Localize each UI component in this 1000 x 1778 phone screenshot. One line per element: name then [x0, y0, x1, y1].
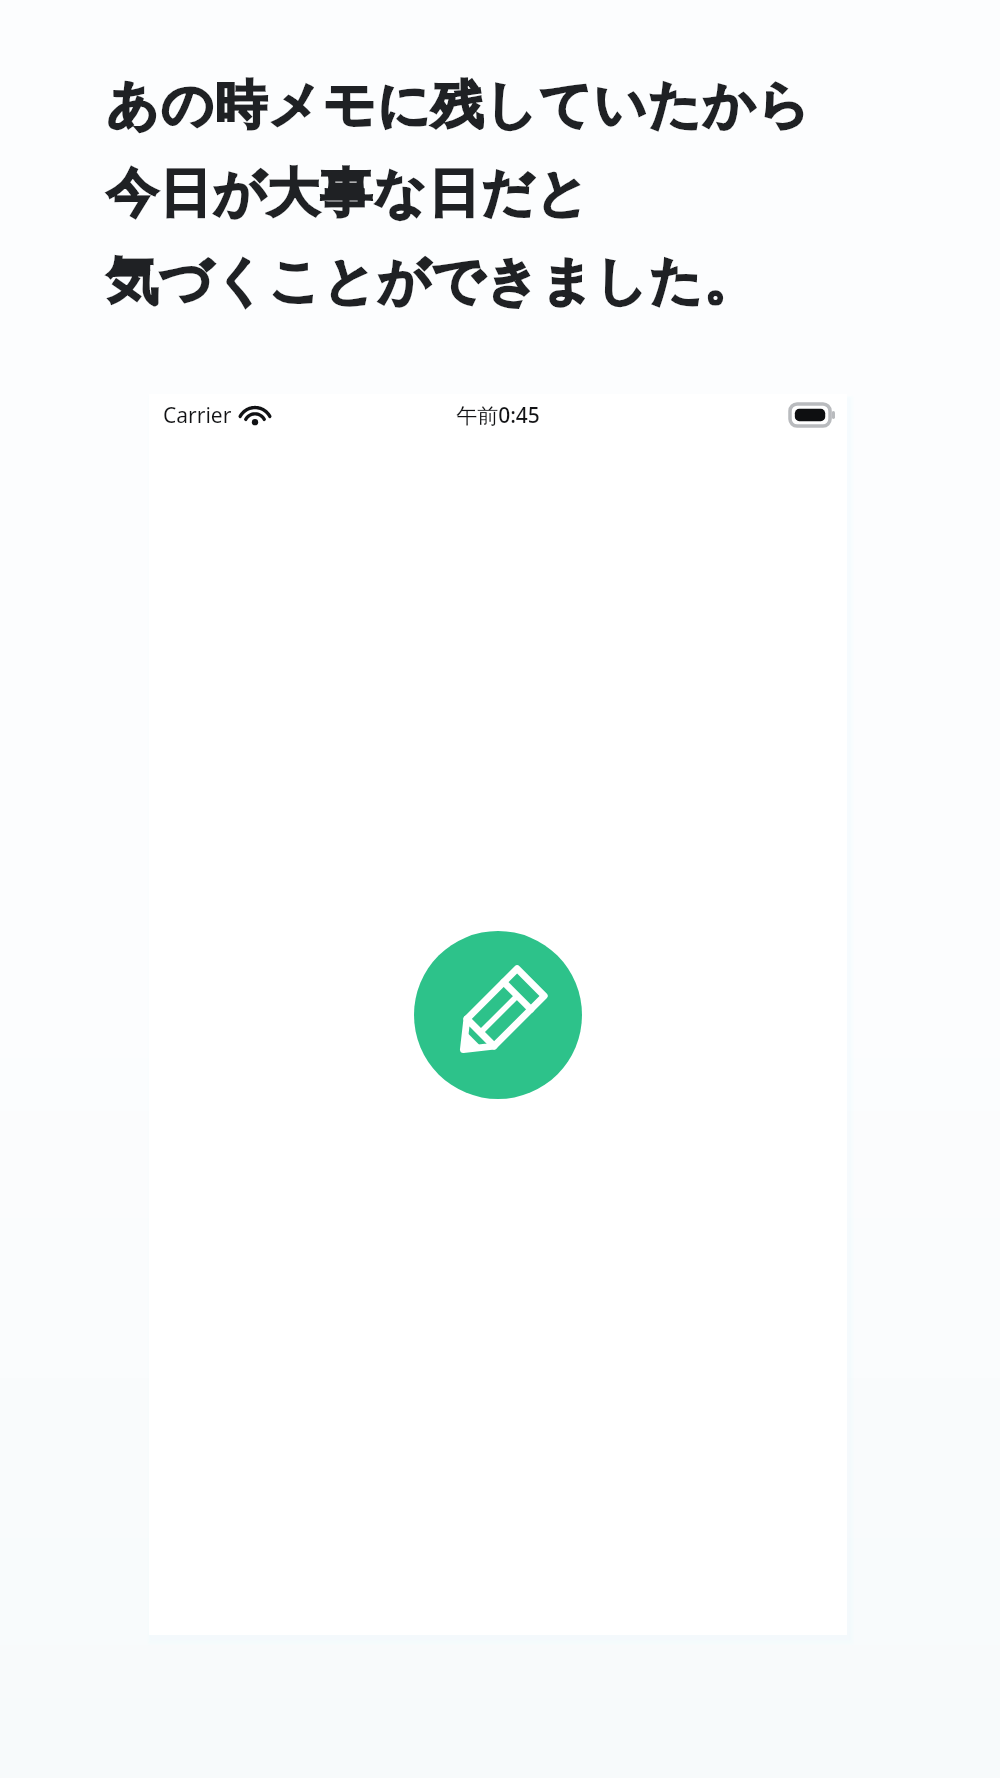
staticText: あの時メモに残していたから [106, 73, 812, 139]
button[interactable]: 新しいメモを作成 [414, 931, 582, 1099]
staticText: 今日が大事な日だと [106, 161, 590, 227]
staticText: Carrier [163, 401, 232, 430]
staticText: 気づくことができました。 [106, 249, 757, 315]
staticText: 午前0:45 [456, 401, 540, 430]
